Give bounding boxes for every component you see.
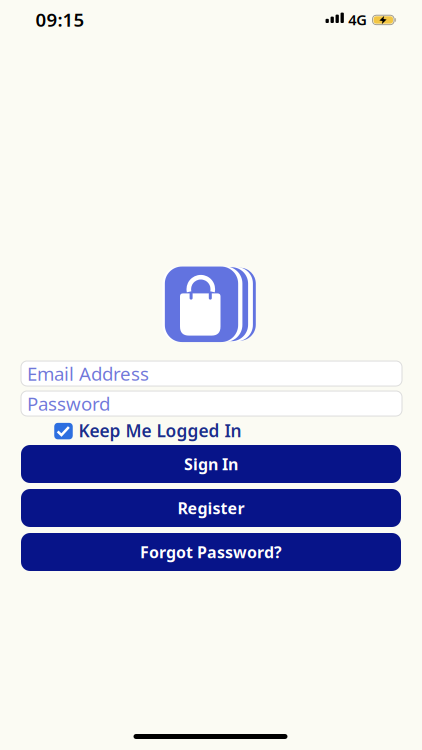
staticText: 09:15 <box>35 7 84 32</box>
button[interactable]: Email Address <box>21 361 402 386</box>
button[interactable]: Sign In <box>21 445 401 483</box>
staticText: Email Address <box>27 361 149 386</box>
staticText: Password <box>27 391 110 416</box>
button[interactable]: Password <box>21 391 402 416</box>
staticText: Keep Me Logged In <box>79 419 242 442</box>
button[interactable]: Register <box>21 489 401 527</box>
button[interactable]: Forgot Password? <box>21 533 401 571</box>
staticText: 4G <box>348 10 367 29</box>
staticText: Sign In <box>184 453 238 475</box>
staticText: Register <box>177 497 244 519</box>
button[interactable]: Keep Me Logged In <box>54 420 238 442</box>
staticText: Forgot Password? <box>140 541 282 563</box>
